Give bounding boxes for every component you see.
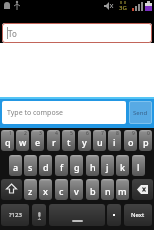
staticText: Next <box>131 211 145 219</box>
staticText: To <box>8 28 17 39</box>
staticText: i <box>113 136 116 148</box>
staticText: 7 <box>101 130 104 137</box>
button[interactable]: f <box>55 155 68 176</box>
button[interactable] <box>32 204 46 226</box>
staticText: l <box>137 161 140 173</box>
staticText: a <box>13 161 19 173</box>
staticText: o <box>128 136 134 148</box>
button[interactable]: Send <box>129 101 152 124</box>
staticText: h <box>90 161 96 173</box>
button[interactable]: To <box>2 23 152 43</box>
staticText: ?123 <box>9 211 22 219</box>
staticText: u <box>97 136 103 148</box>
staticText: q <box>5 136 11 148</box>
staticText: 3 <box>39 130 42 137</box>
staticText: 4 <box>55 130 58 137</box>
button[interactable]: t <box>62 130 75 151</box>
staticText: z <box>28 185 33 197</box>
staticText: f <box>60 161 64 173</box>
staticText: t <box>67 136 71 148</box>
staticText: v <box>74 185 79 197</box>
button[interactable]: k <box>116 155 129 176</box>
staticText: w <box>19 136 27 148</box>
staticText: Type to compose <box>7 108 63 118</box>
staticText: e <box>35 136 41 148</box>
staticText: r <box>52 136 56 148</box>
button[interactable]: b <box>86 179 99 200</box>
staticText: c <box>59 185 64 197</box>
button[interactable]: e <box>31 130 44 151</box>
staticText: 8 <box>116 130 119 137</box>
staticText: 5 <box>70 130 73 137</box>
staticText: n <box>105 185 111 197</box>
button[interactable]: p <box>139 130 152 151</box>
staticText: j <box>106 161 109 173</box>
button[interactable]: n <box>101 179 114 200</box>
staticText: x <box>43 185 48 197</box>
staticText: k <box>120 161 126 173</box>
button[interactable]: g <box>70 155 83 176</box>
button[interactable]: r <box>47 130 60 151</box>
staticText: 6 <box>86 130 89 137</box>
button[interactable] <box>49 204 105 226</box>
staticText: b <box>90 185 96 197</box>
button[interactable]: y <box>78 130 91 151</box>
staticText: m <box>118 185 127 197</box>
button[interactable]: m <box>116 179 129 200</box>
button[interactable]: ?123 <box>1 204 29 226</box>
button[interactable]: q <box>1 130 14 151</box>
staticText: 1 <box>9 130 12 137</box>
button[interactable]: c <box>55 179 68 200</box>
button[interactable]: Type to compose <box>2 101 126 124</box>
button[interactable]: d <box>39 155 52 176</box>
staticText: Send <box>133 109 148 117</box>
button[interactable]: a <box>9 155 22 176</box>
button[interactable]: s <box>24 155 37 176</box>
staticText: 0 <box>147 130 150 137</box>
button[interactable] <box>107 204 121 226</box>
button[interactable] <box>1 179 22 200</box>
staticText: g <box>74 161 80 173</box>
button[interactable]: l <box>132 155 145 176</box>
staticText: 3G <box>119 4 127 12</box>
staticText: d <box>43 161 49 173</box>
button[interactable]: u <box>93 130 106 151</box>
button[interactable] <box>132 179 153 200</box>
button[interactable]: z <box>24 179 37 200</box>
staticText: 9 <box>132 130 135 137</box>
button[interactable]: o <box>124 130 137 151</box>
button[interactable]: w <box>16 130 29 151</box>
button[interactable]: h <box>86 155 99 176</box>
staticText: s <box>28 161 33 173</box>
staticText: p <box>143 136 149 148</box>
staticText: y <box>82 136 87 148</box>
button[interactable]: v <box>70 179 83 200</box>
button[interactable]: i <box>108 130 121 151</box>
button[interactable]: x <box>39 179 52 200</box>
button[interactable]: Next <box>124 204 152 226</box>
button[interactable]: j <box>101 155 114 176</box>
staticText: 2 <box>24 130 27 137</box>
